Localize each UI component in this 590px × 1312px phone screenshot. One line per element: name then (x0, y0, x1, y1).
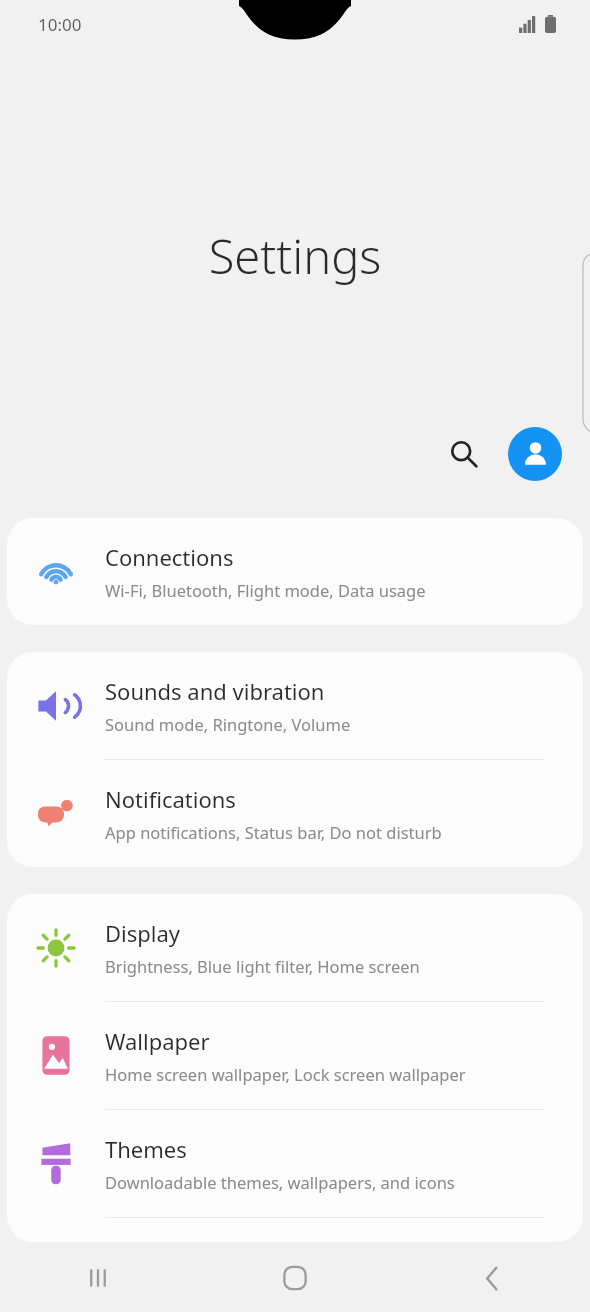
button[interactable]: Display (7, 894, 583, 1001)
button[interactable]: Recents (0, 1244, 196, 1312)
staticText: App notifications, Status bar, Do not di… (105, 821, 442, 843)
staticText: Connections (105, 542, 234, 572)
button[interactable]: Connections (7, 518, 583, 625)
button[interactable]: Themes (7, 1110, 583, 1217)
staticText: Sound mode, Ringtone, Volume (105, 713, 351, 735)
button[interactable]: Wallpaper (7, 1002, 583, 1109)
staticText: Themes (105, 1134, 187, 1164)
staticText: Display (105, 918, 181, 948)
staticText: Home screen wallpaper, Lock screen wallp… (105, 1063, 466, 1085)
button[interactable]: Back (393, 1244, 590, 1312)
staticText: Downloadable themes, wallpapers, and ico… (105, 1171, 455, 1193)
button[interactable]: Home (196, 1244, 393, 1312)
button[interactable]: Sounds and vibration (7, 652, 583, 759)
staticText: 10:00 (38, 13, 82, 36)
staticText: Wallpaper (105, 1026, 210, 1056)
staticText: Notifications (105, 784, 236, 814)
staticText: Brightness, Blue light filter, Home scre… (105, 955, 420, 977)
button[interactable]: Notifications (7, 760, 583, 867)
button[interactable]: Search (436, 426, 492, 482)
staticText: Wi-Fi, Bluetooth, Flight mode, Data usag… (105, 579, 426, 601)
button[interactable]: Account (508, 427, 562, 481)
staticText: Settings (0, 224, 590, 288)
staticText: Sounds and vibration (105, 676, 325, 706)
